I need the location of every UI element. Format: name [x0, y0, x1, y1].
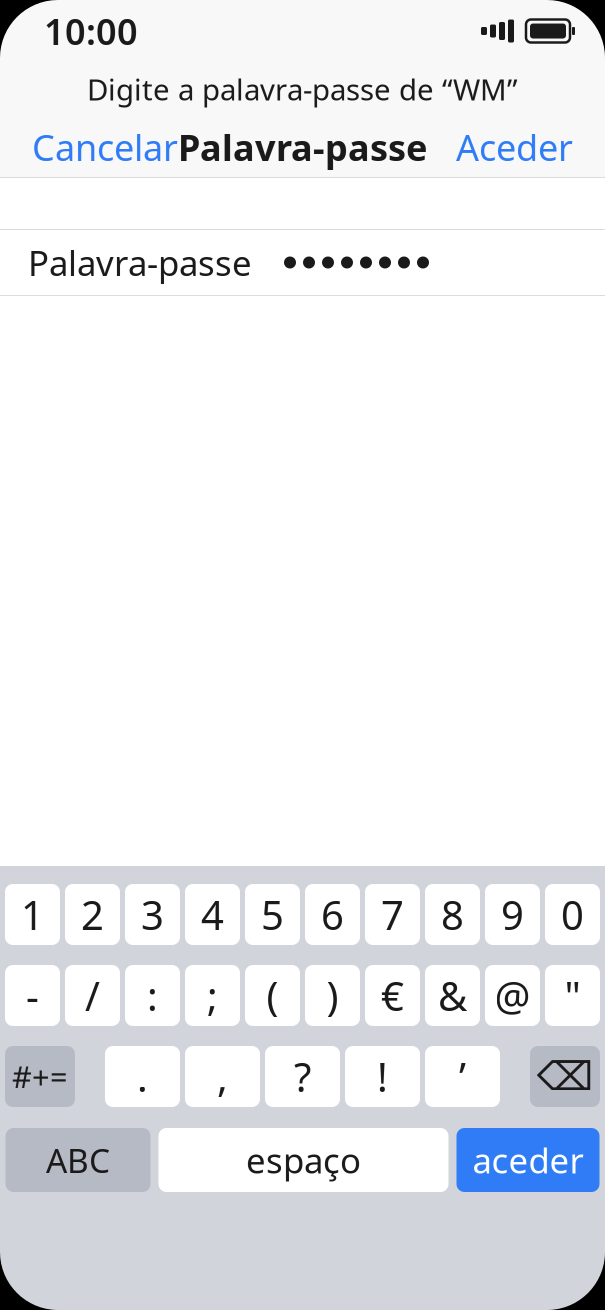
staticText: 4 [201, 888, 224, 941]
button[interactable]: 6 [305, 884, 360, 945]
staticText: , [217, 1050, 228, 1103]
button[interactable]: @ [485, 965, 540, 1026]
staticText: € [381, 969, 404, 1022]
staticText: . [137, 1050, 148, 1103]
button[interactable]: ? [265, 1046, 340, 1107]
button[interactable]: Cancelar [18, 115, 192, 179]
staticText: Digite a palavra-passe de “WM” [87, 69, 518, 108]
staticText: 3 [141, 888, 164, 941]
staticText: ; [207, 969, 218, 1022]
staticText: 5 [261, 888, 284, 941]
button[interactable]: 3 [125, 884, 180, 945]
button[interactable]: ) [305, 965, 360, 1026]
button[interactable]: 8 [425, 884, 480, 945]
staticText: / [85, 969, 100, 1022]
staticText: 0 [561, 888, 584, 941]
button[interactable]: ABC [5, 1128, 150, 1192]
button[interactable]: 2 [65, 884, 120, 945]
staticText: 1 [21, 888, 44, 941]
staticText: 10:00 [44, 7, 138, 55]
button[interactable]: . [105, 1046, 180, 1107]
staticText: ABC [46, 1138, 110, 1182]
staticText: Palavra-passe [28, 239, 252, 285]
staticText: ( [266, 969, 278, 1022]
staticText: ? [294, 1050, 311, 1103]
button[interactable]: € [365, 965, 420, 1026]
button[interactable]: 9 [485, 884, 540, 945]
button[interactable]: ( [245, 965, 300, 1026]
staticText: 9 [501, 888, 524, 941]
staticText: - [26, 969, 39, 1022]
staticText: #+= [12, 1056, 68, 1097]
button[interactable]: : [125, 965, 180, 1026]
staticText: 8 [441, 888, 464, 941]
staticText: espaço [246, 1137, 361, 1183]
staticText: & [438, 969, 467, 1022]
staticText: Cancelar [32, 123, 178, 171]
button[interactable]: - [5, 965, 60, 1026]
staticText: Palavra-passe [178, 123, 427, 171]
button[interactable]: Apagar [530, 1046, 600, 1107]
button[interactable]: ’ [425, 1046, 500, 1107]
button[interactable]: ; [185, 965, 240, 1026]
button[interactable]: & [425, 965, 480, 1026]
staticText: ⌫ [536, 1054, 593, 1099]
staticText: 7 [381, 888, 404, 941]
button[interactable]: aceder [456, 1128, 599, 1192]
staticText: ) [326, 969, 338, 1022]
button[interactable]: / [65, 965, 120, 1026]
staticText: ! [377, 1050, 388, 1103]
button[interactable]: 5 [245, 884, 300, 945]
button[interactable]: 0 [545, 884, 600, 945]
button[interactable]: ! [345, 1046, 420, 1107]
staticText: 6 [321, 888, 344, 941]
button[interactable]: 7 [365, 884, 420, 945]
button[interactable]: espaço [158, 1128, 448, 1192]
button[interactable]: Aceder [442, 115, 587, 179]
staticText: " [564, 969, 580, 1022]
staticText: aceder [472, 1137, 583, 1183]
button[interactable]: Palavra-passe [0, 230, 605, 295]
staticText: @ [494, 969, 530, 1022]
button[interactable]: 1 [5, 884, 60, 945]
staticText: 2 [81, 888, 104, 941]
button[interactable]: " [545, 965, 600, 1026]
staticText: : [147, 969, 158, 1022]
staticText: ’ [459, 1050, 466, 1103]
button[interactable]: #+= [5, 1046, 75, 1107]
staticText: Aceder [456, 123, 573, 171]
button[interactable]: 4 [185, 884, 240, 945]
button[interactable]: , [185, 1046, 260, 1107]
